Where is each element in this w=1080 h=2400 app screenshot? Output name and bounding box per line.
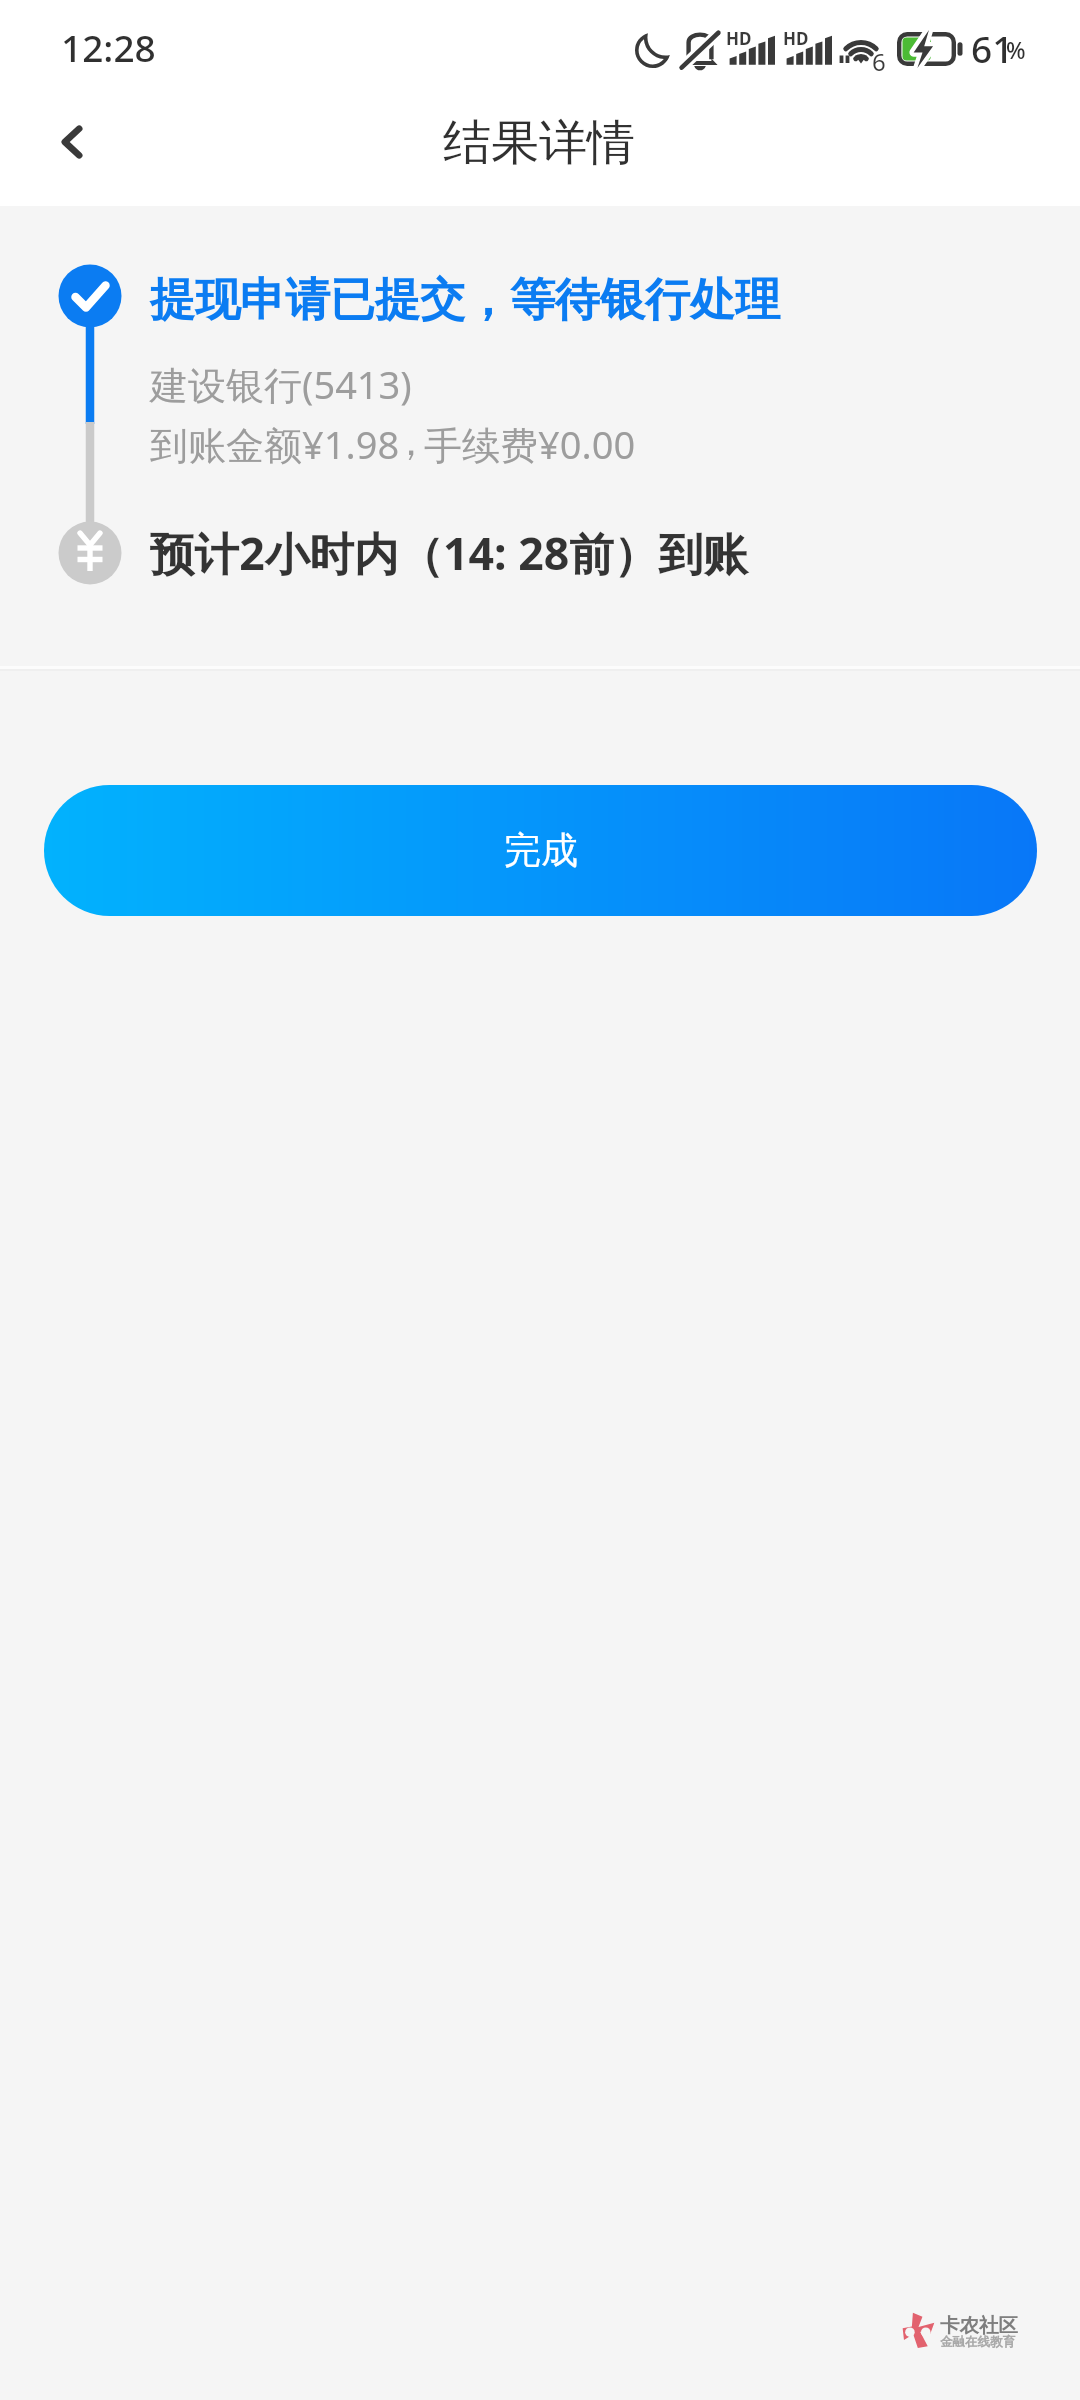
staticText: 金融在线教育 [940, 2334, 1015, 2350]
other: Silent mode [680, 29, 720, 71]
other: Wi-Fi [838, 30, 888, 68]
staticText: 结果详情 [443, 113, 635, 173]
staticText: 6 [872, 45, 886, 78]
button[interactable]: 完成 [44, 785, 1037, 916]
staticText: HD [726, 27, 752, 50]
staticText: 手续费¥0.00 [424, 418, 636, 470]
staticText: 61 [971, 23, 1014, 73]
staticText: 预计2小时内（14: 28前）到账 [150, 522, 748, 583]
staticText: ， [392, 418, 430, 466]
staticText: % [1006, 34, 1026, 65]
other: Do not disturb [635, 31, 672, 68]
other: Battery 61 percent, charging [897, 32, 965, 66]
staticText: HD [783, 27, 809, 50]
button[interactable]: Back [12, 82, 132, 202]
staticText: 完成 [504, 827, 578, 874]
staticText: 12:28 [61, 22, 156, 72]
staticText: 建设银行(5413) [150, 358, 412, 410]
staticText: 卡农社区 [940, 2313, 1018, 2338]
staticText: 提现申请已提交，等待银行处理 [150, 272, 780, 329]
staticText: 到账金额¥1.98 [150, 418, 400, 470]
